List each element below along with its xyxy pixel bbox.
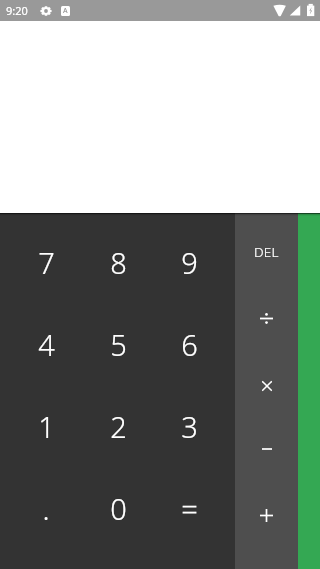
button[interactable]: Plus	[235, 483, 298, 547]
button[interactable]: 5	[78, 303, 156, 385]
button[interactable]: 4	[0, 303, 78, 385]
button[interactable]: Delete	[235, 220, 298, 284]
staticText: 4	[38, 325, 55, 364]
button[interactable]: 1	[0, 385, 78, 467]
button[interactable]: 0	[78, 467, 156, 549]
staticText: 5	[110, 325, 127, 364]
button[interactable]: 6	[156, 303, 234, 385]
button[interactable]: Divide	[235, 286, 298, 350]
button[interactable]: 3	[156, 385, 234, 467]
button[interactable]: Equals	[298, 213, 320, 569]
other: Settings	[40, 6, 52, 16]
staticText: 3	[181, 407, 198, 446]
button[interactable]: 2	[78, 385, 156, 467]
staticText: A	[63, 6, 68, 16]
staticText: 2	[110, 407, 127, 446]
button[interactable]: =	[156, 467, 234, 549]
staticText: 8	[110, 243, 127, 282]
staticText: 9	[181, 243, 198, 282]
button[interactable]: Minus	[235, 417, 298, 481]
button[interactable]: Multiply	[235, 354, 298, 418]
staticText: 7	[38, 243, 55, 282]
button[interactable]: 9	[156, 221, 234, 303]
staticText: 1	[38, 407, 55, 446]
button[interactable]: 7	[0, 221, 78, 303]
staticText: 6	[181, 325, 198, 364]
staticText: =	[181, 489, 198, 528]
button[interactable]: .	[0, 467, 78, 549]
staticText: DEL	[254, 243, 279, 261]
staticText: 9:20	[6, 3, 28, 18]
button[interactable]: 8	[78, 221, 156, 303]
staticText: 0	[110, 489, 127, 528]
staticText: .	[42, 489, 50, 528]
